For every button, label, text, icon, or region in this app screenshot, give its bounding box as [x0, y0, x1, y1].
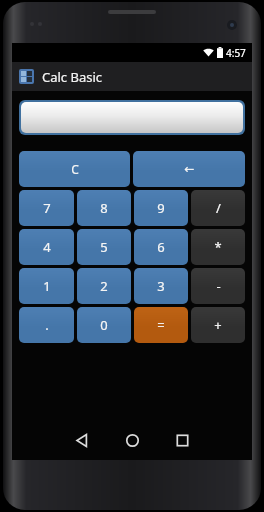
staticText: 0: [100, 316, 108, 334]
staticText: .: [45, 316, 49, 334]
staticText: -: [216, 277, 221, 295]
button[interactable]: C: [19, 151, 130, 187]
button[interactable]: =: [134, 307, 188, 343]
staticText: 9: [157, 199, 165, 217]
staticText: =: [157, 316, 165, 334]
button[interactable]: 6: [134, 229, 188, 265]
staticText: *: [214, 238, 222, 256]
staticText: 7: [43, 199, 51, 217]
staticText: 4:57: [226, 46, 246, 60]
staticText: 1: [43, 277, 51, 295]
button[interactable]: 1: [19, 268, 74, 304]
button[interactable]: [21, 102, 243, 133]
button[interactable]: /: [191, 190, 245, 226]
staticText: 4: [43, 238, 51, 256]
button[interactable]: 7: [19, 190, 74, 226]
button[interactable]: 2: [77, 268, 131, 304]
button[interactable]: Back: [65, 423, 99, 457]
button[interactable]: Recents: [165, 423, 199, 457]
button[interactable]: 3: [134, 268, 188, 304]
staticText: 3: [157, 277, 165, 295]
button[interactable]: 0: [77, 307, 131, 343]
staticText: 5: [100, 238, 108, 256]
staticText: 8: [100, 199, 108, 217]
staticText: Calc Basic: [42, 68, 103, 86]
button[interactable]: 4: [19, 229, 74, 265]
button[interactable]: -: [191, 268, 245, 304]
button[interactable]: +: [191, 307, 245, 343]
button[interactable]: Home: [115, 423, 149, 457]
staticText: 2: [100, 277, 108, 295]
button[interactable]: 5: [77, 229, 131, 265]
button[interactable]: 9: [134, 190, 188, 226]
button[interactable]: .: [19, 307, 74, 343]
button[interactable]: *: [191, 229, 245, 265]
button[interactable]: Backspace: [133, 151, 245, 187]
staticText: 6: [157, 238, 165, 256]
staticText: C: [71, 161, 79, 177]
button[interactable]: 8: [77, 190, 131, 226]
staticText: /: [216, 199, 221, 217]
staticText: +: [214, 316, 222, 334]
staticText: ←: [184, 162, 195, 176]
